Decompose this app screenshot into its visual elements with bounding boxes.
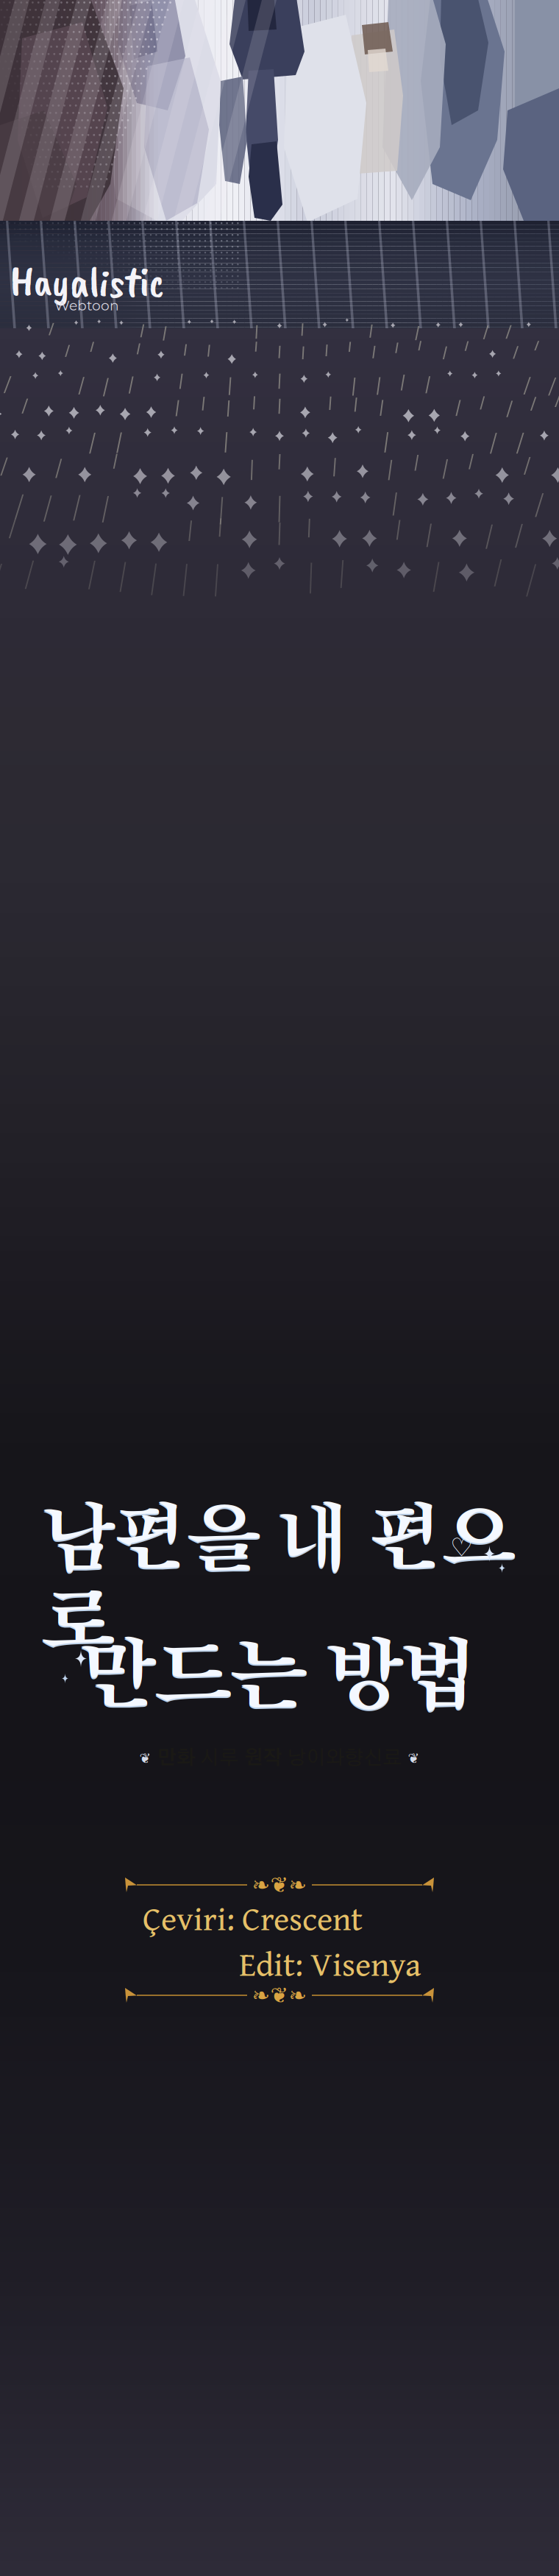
staticText: ❧❦❧ — [252, 1983, 307, 2008]
staticText: 만드는 방법 — [80, 1633, 479, 1720]
staticText: Edit: Visenya — [239, 1939, 421, 1988]
staticText: Webtoon — [54, 297, 119, 314]
staticText: Çeviri: Crescent — [143, 1894, 363, 1942]
staticText: ♡ — [450, 1532, 473, 1562]
staticText: 남편을 내 편으로 — [43, 1497, 516, 1662]
staticText: 만드는 방법 — [80, 1632, 479, 1718]
staticText: ❦ — [408, 1750, 420, 1766]
staticText: Hayalistic — [10, 255, 164, 309]
staticText: ❧❦❧ — [252, 1872, 307, 1897]
staticText: 남편을 내 편으로 — [43, 1498, 516, 1663]
staticText: ❦ — [139, 1750, 151, 1766]
